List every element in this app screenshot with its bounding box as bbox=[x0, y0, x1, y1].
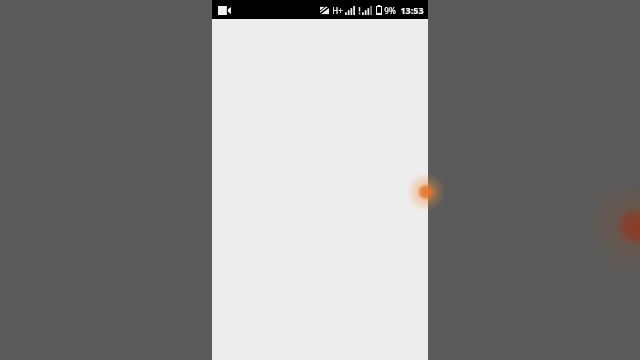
other: Screen recording bbox=[216, 2, 232, 18]
button[interactable] bbox=[212, 19, 428, 360]
staticText: 9% bbox=[384, 5, 396, 16]
staticText: H+ bbox=[332, 5, 343, 16]
staticText: 13:53 bbox=[400, 4, 424, 16]
